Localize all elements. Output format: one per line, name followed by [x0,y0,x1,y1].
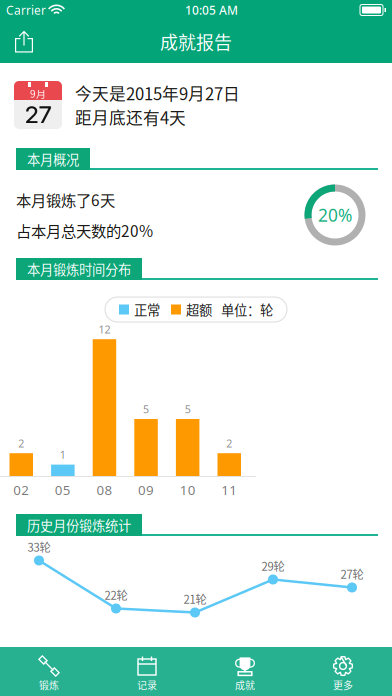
button[interactable]: 记录 [98,647,196,696]
staticText: 成就 [235,678,255,692]
staticText: 20% [318,203,352,226]
staticText: 5 [143,402,149,416]
staticText: 9月 [30,86,46,101]
staticText: 5 [185,402,191,416]
staticText: 12 [98,322,110,336]
button[interactable]: 更多 [294,647,392,696]
staticText: 11 [221,481,237,499]
staticText: 今天是2015年9月27日 [75,81,240,105]
staticText: 更多 [333,678,353,692]
staticText: 21轮 [183,590,206,607]
staticText [46,0,50,21]
staticText: 1 [60,448,66,462]
staticText: 05 [55,481,71,499]
staticText: 27轮 [340,565,363,582]
staticText: 超额 [186,300,212,319]
staticText: 成就报告 [160,28,232,55]
staticText: 08 [96,481,112,499]
staticText: 2 [18,436,24,450]
staticText: 本月概况 [27,149,79,169]
staticText: 22轮 [104,586,127,603]
staticText: 29轮 [261,557,284,574]
staticText: 09 [138,481,154,499]
staticText: 2 [226,436,232,450]
staticText: 占本月总天数的20% [16,219,153,241]
staticText: 正常 [134,300,160,319]
staticText: 记录 [137,678,157,692]
staticText: 27 [24,100,51,129]
staticText: 10:05 AM [185,2,238,18]
staticText: 10 [180,481,196,499]
staticText: 33轮 [27,538,50,555]
staticText: 本月锻炼了6天 [16,189,115,210]
staticText: 本月锻炼时间分布 [27,259,131,279]
staticText: 单位：轮 [221,300,273,319]
staticText: 锻炼 [39,678,59,692]
staticText: 历史月份锻炼统计 [27,515,131,535]
staticText: 02 [13,481,29,499]
button[interactable]: 锻炼 [0,647,98,696]
button[interactable]: 成就 [196,647,294,696]
staticText: 距月底还有4天 [75,105,186,129]
button[interactable]: Share [0,20,48,62]
staticText: Carrier [6,2,46,18]
